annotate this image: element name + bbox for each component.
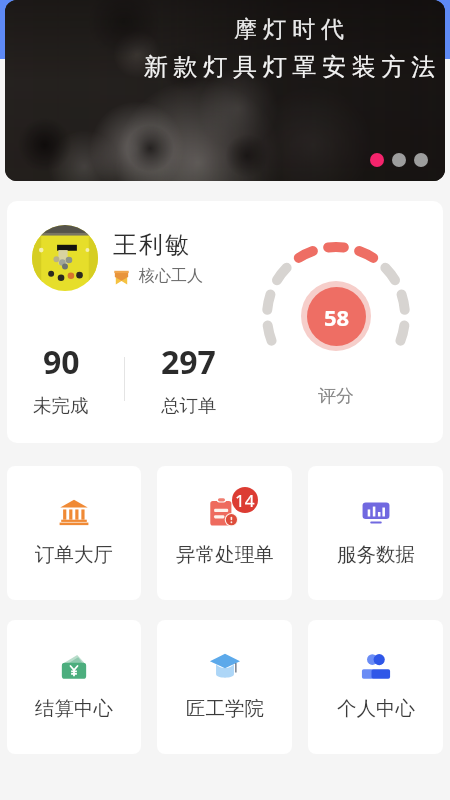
button[interactable]: 订单大厅 [7,466,141,600]
button[interactable]: 14 [157,466,292,600]
button[interactable]: 结算中心 [7,620,141,754]
staticText: 核心工人 [139,266,203,286]
button[interactable]: 个人中心 [308,620,443,754]
button[interactable]: 摩灯时代 [5,0,445,181]
staticText: 14 [235,489,255,512]
staticText: 订单大厅 [35,542,113,567]
staticText: 摩灯时代 [231,15,347,44]
button[interactable]: 服务数据 [308,466,443,600]
staticText: 王利敏 [112,230,190,260]
staticText: 异常处理单 [176,542,274,567]
staticText: 58 [324,302,350,332]
staticText: 297 [161,340,216,384]
staticText: 匠工学院 [186,696,264,721]
staticText: 结算中心 [35,696,113,721]
staticText: 90 [43,340,80,384]
staticText: 总订单 [161,394,217,417]
staticText: 评分 [318,385,354,408]
staticText: 服务数据 [337,542,415,567]
staticText: 未完成 [33,394,89,417]
staticText: 新款灯具灯罩安装方法 [141,52,438,82]
button[interactable]: 匠工学院 [157,620,292,754]
staticText: 个人中心 [337,696,415,721]
